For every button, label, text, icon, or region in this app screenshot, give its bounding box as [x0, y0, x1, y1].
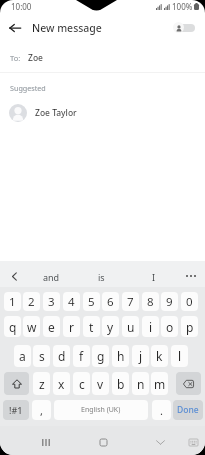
staticText: I: [152, 271, 156, 283]
button[interactable]: More options: [182, 267, 200, 285]
staticText: r: [69, 319, 74, 335]
staticText: g: [97, 348, 105, 364]
staticText: 100%: [172, 1, 193, 12]
button[interactable]: r: [63, 316, 80, 337]
button[interactable]: i: [142, 316, 159, 337]
staticText: s: [39, 348, 45, 364]
staticText: i: [149, 319, 153, 335]
button[interactable]: m: [151, 372, 168, 395]
button[interactable]: 9: [161, 292, 178, 311]
staticText: and: [43, 271, 60, 283]
staticText: To:: [10, 53, 21, 63]
staticText: Zoe: [28, 52, 43, 64]
staticText: c: [79, 376, 85, 392]
button[interactable]: a: [14, 345, 31, 367]
staticText: d: [58, 348, 66, 364]
staticText: u: [127, 319, 135, 335]
button[interactable]: z: [33, 372, 50, 395]
staticText: f: [79, 348, 84, 364]
button[interactable]: 6: [102, 292, 119, 311]
button[interactable]: Symbols: [3, 400, 29, 420]
button[interactable]: e: [43, 316, 60, 337]
button[interactable]: Done: [173, 400, 203, 420]
button[interactable]: 2: [23, 292, 40, 311]
staticText: v: [97, 376, 104, 392]
staticText: 6: [107, 294, 114, 310]
staticText: n: [137, 376, 145, 392]
staticText: Zoe Taylor: [35, 107, 77, 119]
button[interactable]: x: [53, 372, 70, 395]
staticText: Suggested: [10, 83, 46, 93]
button[interactable]: l: [171, 345, 188, 367]
staticText: a: [19, 348, 26, 364]
button[interactable]: b: [112, 372, 129, 395]
button[interactable]: s: [33, 345, 50, 367]
button[interactable]: and: [29, 261, 73, 292]
staticText: 9: [166, 294, 173, 310]
button[interactable]: 7: [122, 292, 139, 311]
button[interactable]: 5: [83, 292, 100, 311]
button[interactable]: q: [4, 316, 21, 337]
button[interactable]: n: [132, 372, 149, 395]
staticText: m: [154, 376, 166, 392]
staticText: w: [27, 319, 37, 335]
button[interactable]: y: [102, 316, 119, 337]
staticText: .: [160, 403, 163, 418]
staticText: t: [89, 319, 94, 335]
button[interactable]: u: [122, 316, 139, 337]
button[interactable]: t: [83, 316, 100, 337]
button[interactable]: English (UK): [54, 400, 148, 420]
staticText: Done: [177, 404, 199, 416]
button[interactable]: Hide keyboard: [148, 430, 172, 454]
button[interactable]: j: [132, 345, 149, 367]
button[interactable]: Contacts: [173, 22, 195, 33]
button[interactable]: v: [92, 372, 109, 395]
staticText: 7: [127, 294, 134, 310]
staticText: 4: [68, 294, 75, 310]
button[interactable]: o: [161, 316, 178, 337]
staticText: b: [117, 376, 125, 392]
button[interactable]: h: [112, 345, 129, 367]
staticText: q: [9, 319, 17, 335]
button[interactable]: 1: [4, 292, 21, 311]
button[interactable]: p: [181, 316, 198, 337]
staticText: k: [156, 348, 163, 364]
button[interactable]: c: [73, 372, 90, 395]
button[interactable]: Zoe Taylor: [0, 102, 205, 124]
button[interactable]: f: [73, 345, 90, 367]
button[interactable]: Backspace: [176, 372, 201, 395]
staticText: English (UK): [81, 405, 121, 415]
button[interactable]: 3: [43, 292, 60, 311]
button[interactable]: g: [92, 345, 109, 367]
button[interactable]: Home: [91, 430, 115, 454]
staticText: 3: [48, 294, 55, 310]
button[interactable]: w: [23, 316, 40, 337]
button[interactable]: Recents: [34, 430, 58, 454]
staticText: o: [166, 319, 174, 335]
button[interactable]: Navigate up: [4, 17, 26, 39]
staticText: 2: [28, 294, 35, 310]
staticText: New message: [32, 21, 102, 35]
staticText: 10:00: [11, 1, 32, 12]
staticText: ,: [40, 403, 43, 418]
button[interactable]: Keyboard layout: [181, 430, 205, 454]
button[interactable]: 4: [63, 292, 80, 311]
button[interactable]: 8: [142, 292, 159, 311]
staticText: x: [58, 376, 65, 392]
staticText: p: [186, 319, 194, 335]
button[interactable]: d: [53, 345, 70, 367]
staticText: j: [139, 348, 143, 364]
button[interactable]: 0: [181, 292, 198, 311]
button[interactable]: Previous suggestions: [5, 267, 23, 285]
button[interactable]: k: [151, 345, 168, 367]
button[interactable]: .: [152, 400, 171, 420]
button[interactable]: ,: [32, 400, 51, 420]
button[interactable]: I: [132, 261, 176, 292]
staticText: l: [178, 348, 182, 364]
staticText: e: [48, 319, 55, 335]
staticText: h: [117, 348, 125, 364]
button[interactable]: Shift: [4, 372, 29, 395]
button[interactable]: is: [79, 261, 123, 292]
staticText: 0: [186, 294, 193, 310]
staticText: is: [98, 271, 105, 283]
